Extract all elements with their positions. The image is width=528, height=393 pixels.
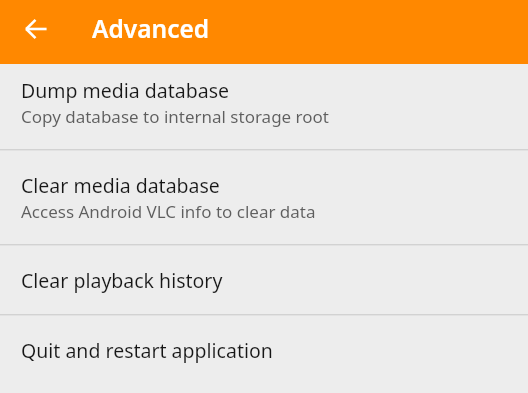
staticText: Access Android VLC info to clear data xyxy=(21,200,316,223)
staticText: Advanced xyxy=(92,12,210,45)
button[interactable]: Clear media database xyxy=(0,151,528,244)
button[interactable]: Clear playback history xyxy=(0,246,528,314)
staticText: Clear media database xyxy=(21,172,220,199)
staticText: Dump media database xyxy=(21,77,230,104)
staticText: Copy database to internal storage root xyxy=(21,105,330,128)
staticText: Quit and restart application xyxy=(21,337,273,364)
button[interactable]: Quit and restart application xyxy=(0,316,528,393)
button[interactable]: Navigate up xyxy=(14,7,58,51)
staticText: Clear playback history xyxy=(21,267,223,294)
button[interactable]: Dump media database xyxy=(0,64,528,149)
